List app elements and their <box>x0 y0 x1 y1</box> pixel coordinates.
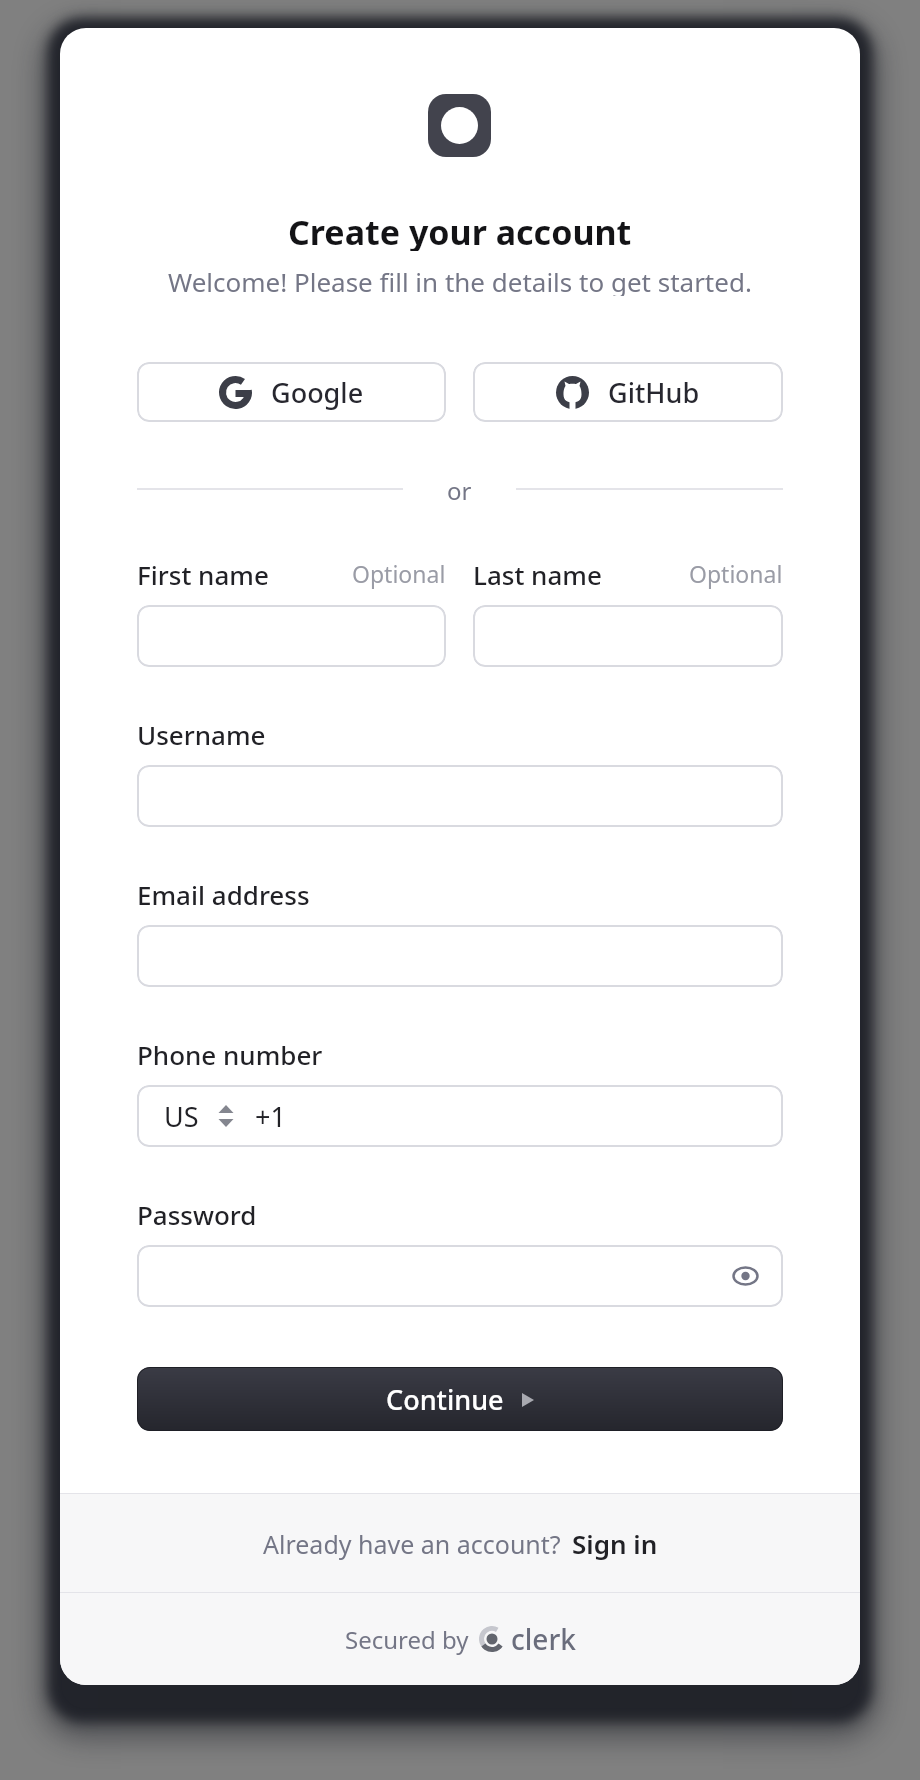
staticText: US <box>164 1098 199 1135</box>
staticText: Welcome! Please fill in the details to g… <box>168 264 752 296</box>
button[interactable] <box>137 765 783 827</box>
button[interactable] <box>473 605 783 667</box>
button[interactable]: Continue <box>137 1367 783 1431</box>
staticText: Google <box>271 374 364 411</box>
staticText: Optional <box>689 558 783 589</box>
staticText: Create your account <box>288 209 632 251</box>
staticText: Sign in <box>572 1526 658 1561</box>
staticText: clerk <box>511 1620 576 1658</box>
staticText: Email address <box>137 877 310 909</box>
button[interactable] <box>137 1245 783 1307</box>
staticText: Secured by <box>345 1623 469 1656</box>
button[interactable]: GitHub <box>473 362 783 422</box>
staticText: Optional <box>352 558 446 589</box>
staticText: Last name <box>473 557 602 589</box>
staticText: +1 <box>255 1098 286 1135</box>
staticText: Phone number <box>137 1037 323 1069</box>
staticText: GitHub <box>608 374 700 411</box>
staticText: Continue <box>386 1381 504 1418</box>
staticText: or <box>447 474 472 504</box>
button[interactable] <box>137 925 783 987</box>
button[interactable] <box>137 605 446 667</box>
staticText: Username <box>137 717 266 749</box>
button[interactable]: Already have an account? <box>263 1526 658 1561</box>
staticText: First name <box>137 557 269 589</box>
staticText: Already have an account? <box>263 1527 561 1561</box>
staticText: Password <box>137 1197 257 1229</box>
button[interactable]: US <box>137 1085 783 1147</box>
button[interactable]: Google <box>137 362 446 422</box>
